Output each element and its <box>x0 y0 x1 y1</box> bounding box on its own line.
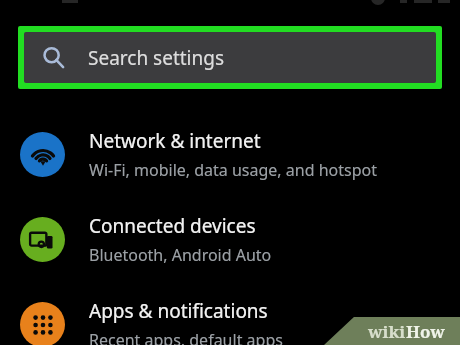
staticText: Connected devices <box>89 213 256 239</box>
button[interactable]: Search <box>24 32 436 83</box>
button[interactable]: Connected devices <box>0 197 460 282</box>
staticText: How <box>406 320 445 343</box>
staticText: Wi-Fi, mobile, data usage, and hotspot <box>89 159 377 181</box>
button[interactable]: Network & internet <box>0 112 460 197</box>
staticText: Network & internet <box>89 128 261 154</box>
staticText: Search settings <box>88 45 225 71</box>
button[interactable]: Apps & notifications <box>0 282 460 345</box>
staticText: wiki <box>368 320 406 343</box>
staticText: Recent apps, default apps <box>89 329 283 345</box>
other: Search <box>42 46 66 70</box>
staticText: Apps & notifications <box>89 298 268 324</box>
staticText: Bluetooth, Android Auto <box>89 244 272 266</box>
